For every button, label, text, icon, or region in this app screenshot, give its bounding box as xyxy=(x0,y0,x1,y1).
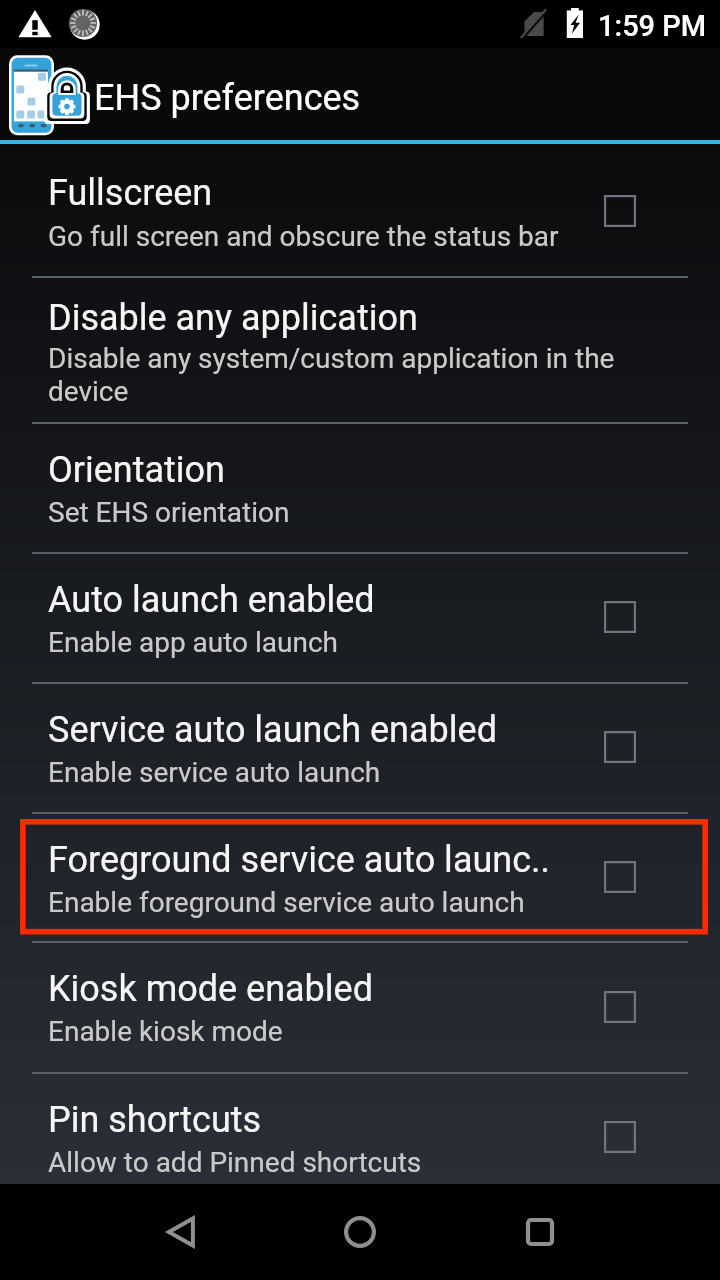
staticText: Fullscreen xyxy=(48,172,213,214)
button[interactable]: Foreground service auto launc.. xyxy=(0,814,720,941)
staticText: 1:59 PM xyxy=(598,9,707,43)
button[interactable]: Home xyxy=(312,1184,408,1280)
staticText: EHS preferences xyxy=(94,77,361,119)
staticText: Disable any system/custom application in… xyxy=(48,342,615,375)
button[interactable]: Orientation xyxy=(0,424,720,552)
button[interactable]: Kiosk mode enabled xyxy=(0,943,720,1072)
staticText: device xyxy=(48,375,129,408)
staticText: Foreground service auto launc.. xyxy=(48,839,551,881)
staticText: Enable foreground service auto launch xyxy=(48,886,525,919)
button[interactable]: Service auto launch enabled xyxy=(0,684,720,812)
button[interactable]: Recent apps xyxy=(492,1184,588,1280)
staticText: Enable app auto launch xyxy=(48,626,339,659)
button[interactable]: Back xyxy=(132,1184,228,1280)
staticText: Allow to add Pinned shortcuts xyxy=(48,1146,422,1179)
staticText: Go full screen and obscure the status ba… xyxy=(48,220,559,253)
staticText: Auto launch enabled xyxy=(48,579,375,621)
staticText: Kiosk mode enabled xyxy=(48,968,373,1010)
button[interactable]: EHS preferences app icon xyxy=(8,52,92,136)
button[interactable]: Disable any application xyxy=(0,278,720,422)
staticText: Enable service auto launch xyxy=(48,756,381,789)
button[interactable]: Pin shortcuts xyxy=(0,1074,720,1184)
staticText: Enable kiosk mode xyxy=(48,1015,283,1048)
staticText: Orientation xyxy=(48,449,225,491)
button[interactable]: Auto launch enabled xyxy=(0,554,720,682)
staticText: Disable any application xyxy=(48,297,418,339)
staticText: Set EHS orientation xyxy=(48,496,290,529)
staticText: Service auto launch enabled xyxy=(48,709,497,751)
staticText: Pin shortcuts xyxy=(48,1099,262,1141)
button[interactable]: Fullscreen xyxy=(0,144,720,276)
